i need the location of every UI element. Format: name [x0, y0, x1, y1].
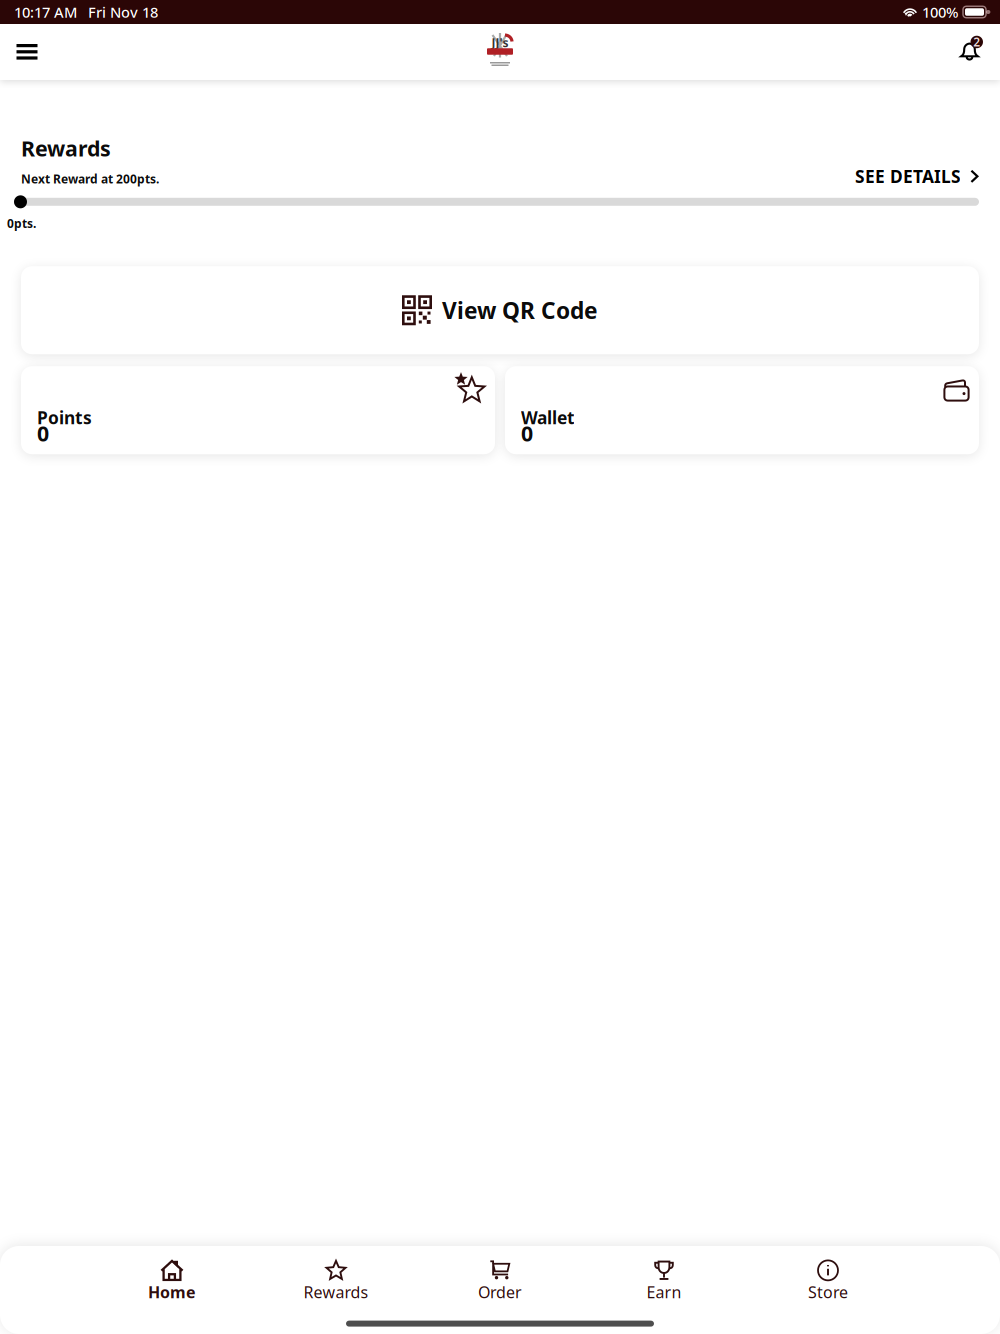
staticText: Wallet: [521, 406, 575, 429]
staticText: 100%: [922, 2, 958, 22]
button[interactable]: Wallet: [505, 366, 979, 454]
button[interactable]: Store: [746, 1242, 910, 1313]
staticText: 0: [521, 419, 533, 447]
button[interactable]: Menu: [0, 25, 58, 79]
staticText: SEE DETAILS: [855, 165, 961, 188]
staticText: Order: [478, 1281, 522, 1303]
staticText: View QR Code: [442, 295, 598, 325]
button[interactable]: View QR Code: [21, 266, 979, 354]
staticText: Store: [808, 1281, 848, 1303]
staticText: Fri Nov 18: [88, 2, 158, 22]
button[interactable]: Notifications: [941, 24, 1000, 79]
staticText: 2: [973, 34, 980, 50]
staticText: Earn: [646, 1281, 681, 1303]
button[interactable]: Points: [21, 366, 495, 454]
staticText: 10:17 AM: [14, 2, 77, 22]
staticText: 0: [37, 419, 49, 447]
staticText: Home: [148, 1281, 196, 1303]
button[interactable]: SEE DETAILS: [855, 165, 1000, 188]
staticText: Rewards: [303, 1281, 368, 1303]
staticText: Next Reward at 200pts.: [21, 171, 159, 187]
button[interactable]: Rewards: [254, 1242, 418, 1313]
button[interactable]: Earn: [582, 1242, 746, 1313]
staticText: JJ's: [491, 34, 508, 50]
staticText: Rewards: [21, 134, 111, 162]
staticText: 0pts.: [7, 215, 36, 231]
button[interactable]: Home: [90, 1242, 254, 1313]
button[interactable]: Order: [418, 1242, 582, 1313]
staticText: Points: [37, 406, 92, 429]
